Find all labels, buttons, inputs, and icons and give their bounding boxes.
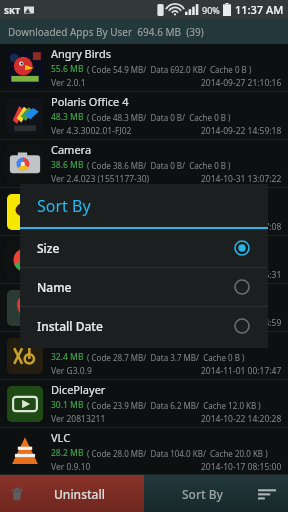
staticText: 33.1 MB xyxy=(51,303,84,315)
button[interactable]: KakaoTalk xyxy=(0,188,288,236)
staticText: 28.2 MB xyxy=(51,447,84,459)
staticText: 30.1 MB xyxy=(51,399,84,411)
staticText: Install Date xyxy=(37,318,103,334)
staticText: Ver 2.0.1 xyxy=(51,77,86,89)
staticText: VLC xyxy=(51,430,71,445)
staticText: Ver 2.4.023 (1551177-30) xyxy=(51,173,150,185)
staticText: Camera xyxy=(51,142,92,157)
button[interactable]: Angry Birds xyxy=(0,44,288,92)
button[interactable]: Camera xyxy=(0,140,288,188)
staticText: 2014-11-01 00:17:47 xyxy=(201,365,282,377)
staticText: 11:37 AM xyxy=(235,2,284,17)
staticText: Ver 8.4.0 xyxy=(51,317,86,329)
staticText: 2014-11-01 07:08 xyxy=(213,221,282,233)
staticText: Polaris Office 4 xyxy=(51,94,129,109)
staticText: Ver 20813211 xyxy=(51,413,106,425)
button[interactable]: Sort By xyxy=(144,475,288,512)
staticText: 2014-09-27 21:10:16 xyxy=(201,77,282,89)
staticText: Downloaded Apps By User 694.6 MB (39) xyxy=(8,25,204,39)
staticText: Uninstall xyxy=(54,486,105,502)
staticText: ( Code 30.0 MB/ Data 3.1 MB/ Cache 0 B ) xyxy=(87,304,245,315)
staticText: 55.6 MB xyxy=(51,63,84,75)
staticText: ( Code 28.7 MB/ Data 3.7 MB/ Cache 0 B ) xyxy=(87,352,245,363)
staticText: ( Code 38.6 MB/ Data 0 B/ Cache 0 B ) xyxy=(87,160,231,171)
staticText: Name xyxy=(37,279,72,295)
staticText: SKT xyxy=(4,4,21,16)
staticText: 2014-09-11 14:59 xyxy=(213,317,282,329)
staticText: 2014-10-17 08:15:00 xyxy=(201,461,282,473)
button[interactable]: Chrome xyxy=(0,236,288,284)
staticText: 2014-10-20 15:31 xyxy=(213,269,282,281)
staticText: KakaoTalk xyxy=(51,190,103,205)
staticText: ( Code 30.1 MB/ Data 6.3 MB/ Cache 0 B ) xyxy=(87,208,245,219)
staticText: 48.3 MB xyxy=(51,111,84,123)
staticText: Ver 4.7.3 xyxy=(51,221,86,233)
staticText: ( Code 23.9 MB/ Data 6.2 MB/ Cache 12.0 … xyxy=(87,400,261,411)
staticText: ( Code 48.3 MB/ Data 0 B/ Cache 0 B ) xyxy=(87,112,231,123)
button[interactable]: Polaris Office 4 xyxy=(0,92,288,140)
staticText: 2014-09-22 14:59:18 xyxy=(201,125,282,137)
staticText: Angry Birds xyxy=(51,46,111,61)
button[interactable]: VLC xyxy=(0,428,288,475)
other: Sort options xyxy=(258,487,276,501)
staticText: DicePlayer xyxy=(51,382,106,397)
button[interactable]: Uninstall xyxy=(0,475,144,512)
staticText: 2014-10-31 13:07:22 xyxy=(201,173,282,185)
staticText: Ver 0.9.10 xyxy=(51,461,91,473)
staticText: ( Code 28.0 MB/ Data 104.0 KB/ Cache 20.… xyxy=(87,448,268,459)
staticText: ( Code 54.9 MB/ Data 692.0 KB/ Cache 0 B… xyxy=(87,64,252,75)
button[interactable]: Kakao xyxy=(0,332,288,380)
staticText: 90% xyxy=(202,4,220,16)
button[interactable]: Name xyxy=(20,268,268,306)
button[interactable]: DicePlayer xyxy=(0,380,288,428)
staticText: 36.4 MB xyxy=(51,207,84,219)
button[interactable]: Downloaded Apps By User 694.6 MB (39) xyxy=(0,19,288,44)
staticText: Sort By xyxy=(182,486,223,502)
staticText: Maps xyxy=(51,286,80,301)
staticText: Ver 4.3.3002.01-FJ02 xyxy=(51,125,132,137)
staticText: Kakao xyxy=(51,334,83,349)
staticText: 32.4 MB xyxy=(51,351,84,363)
staticText: Sort By xyxy=(37,195,91,217)
button[interactable]: Size xyxy=(20,229,268,267)
button[interactable]: Maps xyxy=(0,284,288,332)
staticText: Ver G3.0.9 xyxy=(51,365,92,377)
staticText: 38.6 MB xyxy=(51,159,84,171)
staticText: Chrome xyxy=(51,238,93,253)
staticText: Size xyxy=(37,240,60,256)
button[interactable]: Install Date xyxy=(20,307,268,345)
staticText: 2014-10-22 14:20:28 xyxy=(201,413,282,425)
